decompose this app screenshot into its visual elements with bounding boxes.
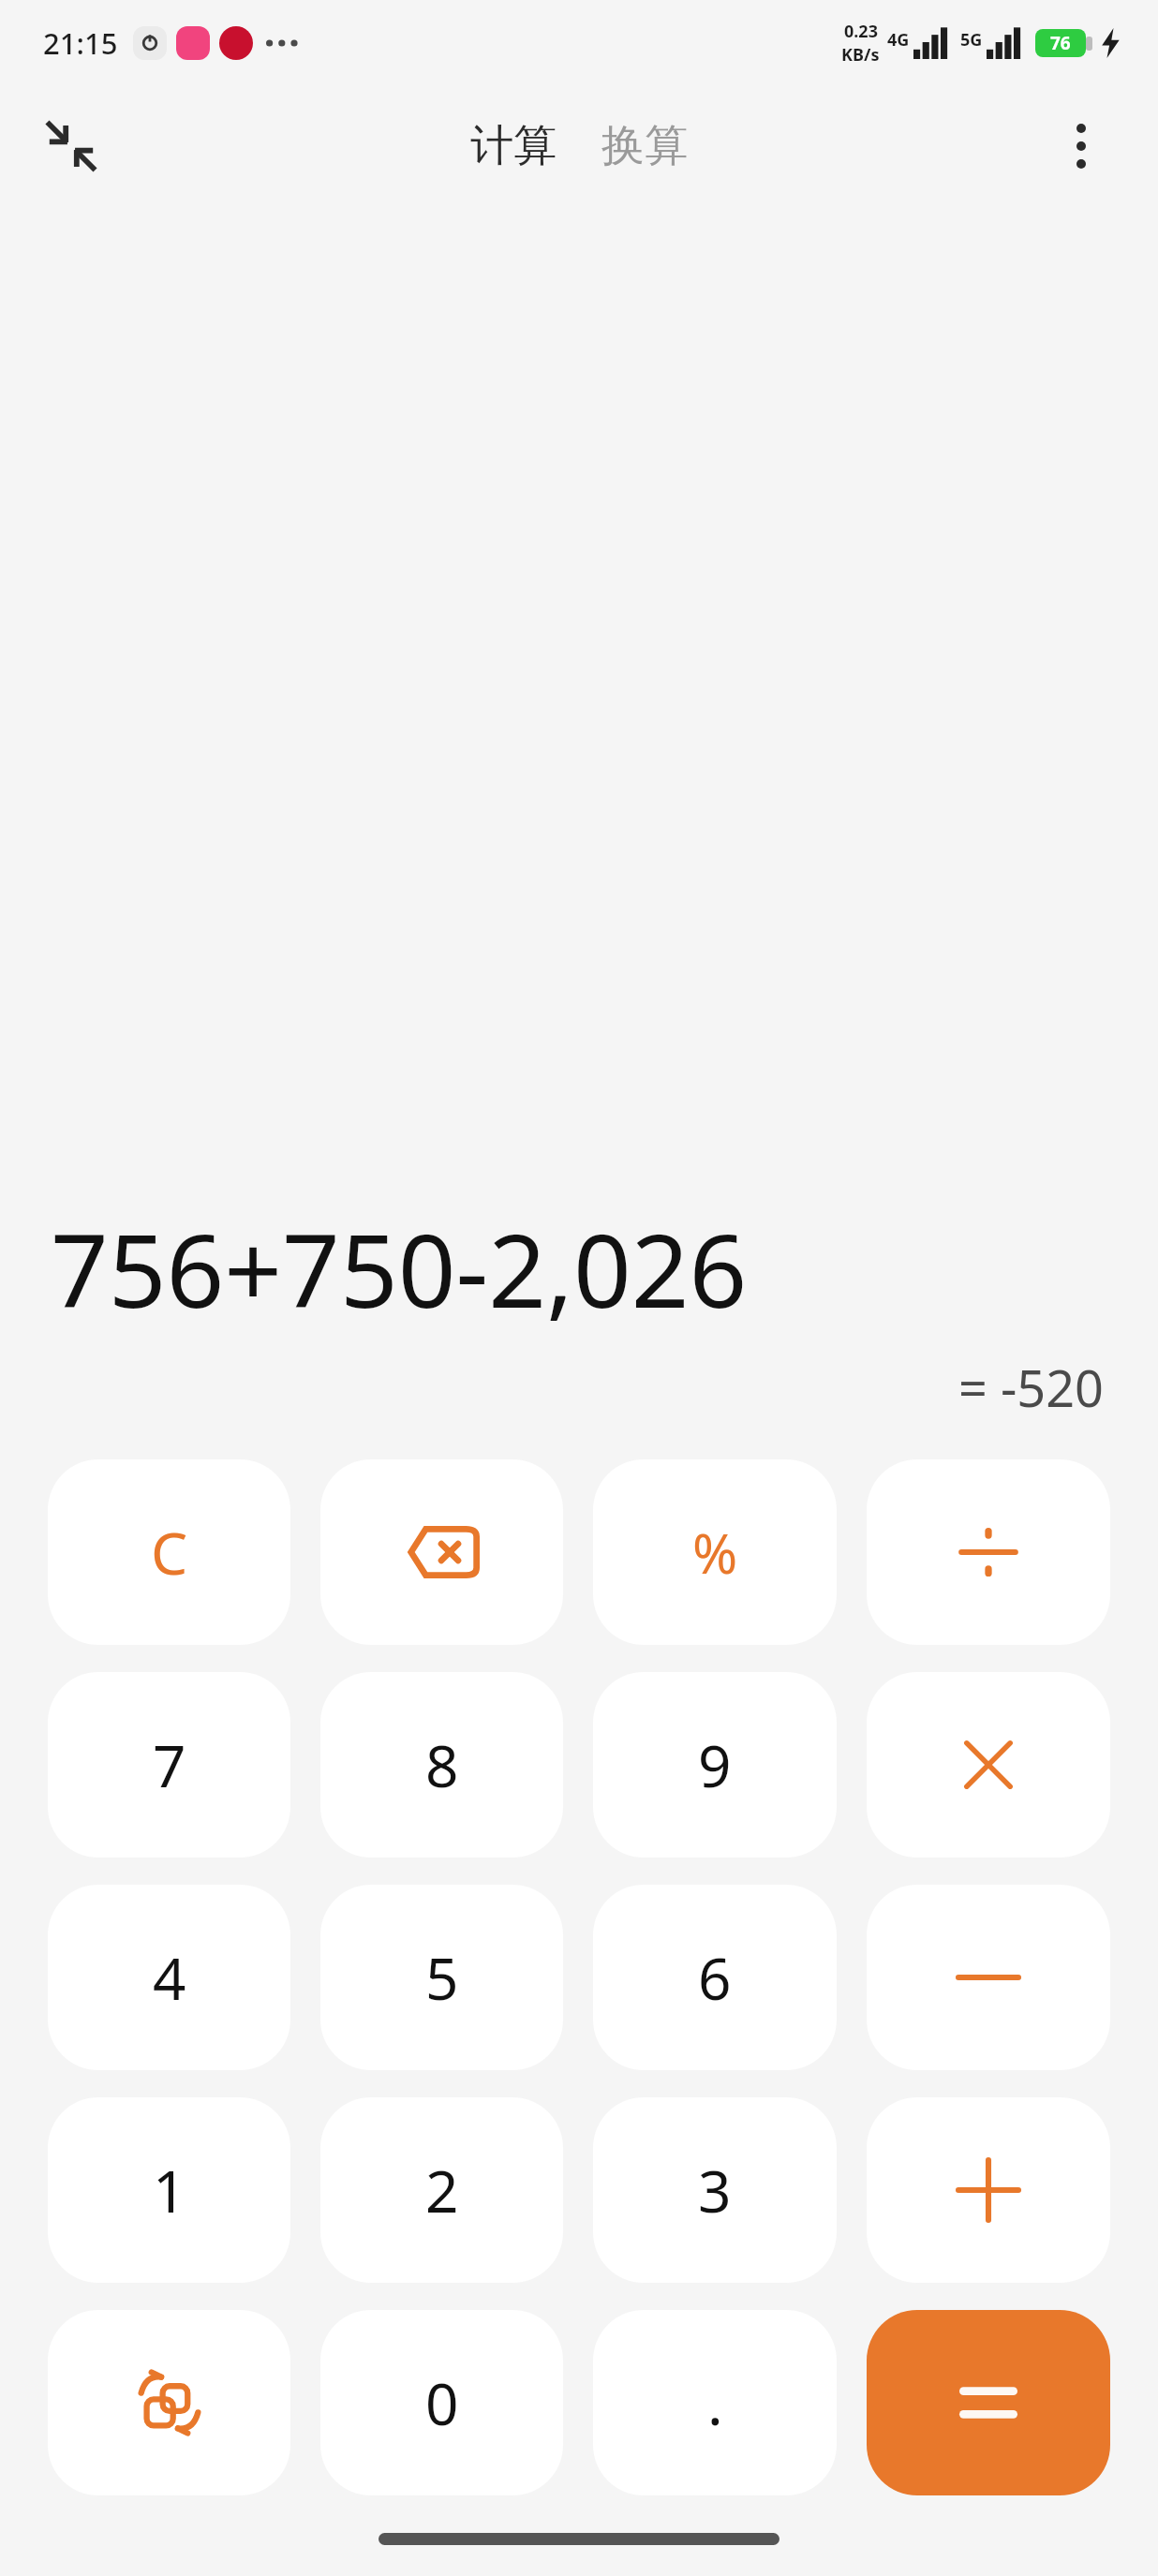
button[interactable]: 5 [320, 1885, 563, 2070]
staticText: 5 [425, 1938, 459, 2017]
button[interactable]: 2 [320, 2097, 563, 2283]
staticText: 8 [425, 1725, 459, 1804]
button[interactable]: Minus [867, 1885, 1110, 2070]
staticText: 换算 [601, 119, 688, 173]
staticText: 2 [425, 2151, 459, 2229]
staticText: 4G [887, 28, 910, 52]
button[interactable]: Equals [867, 2310, 1110, 2495]
button[interactable]: 0 [320, 2310, 563, 2495]
button[interactable]: Collapse [28, 103, 114, 189]
button[interactable]: 换算 [586, 108, 703, 185]
staticText: 4 [153, 1938, 186, 2017]
button[interactable]: Percent [593, 1459, 837, 1645]
staticText: 21:15 [43, 23, 118, 63]
staticText: 计算 [470, 119, 557, 173]
staticText: 0.23 [844, 20, 878, 43]
staticText: 5G [960, 28, 983, 52]
staticText: C [151, 1513, 188, 1591]
button[interactable]: Divide [867, 1459, 1110, 1645]
button[interactable]: Backspace [320, 1459, 563, 1645]
staticText: % [692, 1516, 738, 1590]
button[interactable]: 6 [593, 1885, 837, 2070]
staticText: 6 [698, 1938, 732, 2017]
staticText: 3 [698, 2151, 732, 2229]
button[interactable]: 7 [48, 1672, 290, 1858]
staticText: 0 [425, 2363, 459, 2442]
staticText: KB/s [841, 43, 880, 67]
staticText: = -520 [51, 1353, 1104, 1422]
button[interactable]: 计算 [455, 108, 572, 185]
button[interactable]: Multiply [867, 1672, 1110, 1858]
button[interactable]: 8 [320, 1672, 563, 1858]
button[interactable]: 3 [593, 2097, 837, 2283]
button[interactable]: 1 [48, 2097, 290, 2283]
staticText: 756+750-2,026 [51, 1200, 748, 1338]
button[interactable]: Clear [48, 1459, 290, 1645]
staticText: 76 [1050, 31, 1071, 55]
staticText: 1 [153, 2151, 186, 2229]
staticText: . [707, 2363, 723, 2442]
button[interactable]: 4 [48, 1885, 290, 2070]
button[interactable]: Unit conversion [48, 2310, 290, 2495]
button[interactable]: More options [1042, 107, 1121, 185]
button[interactable]: Decimal point [593, 2310, 837, 2495]
button[interactable]: Plus [867, 2097, 1110, 2283]
staticText: 7 [153, 1725, 186, 1804]
staticText: 9 [698, 1725, 732, 1804]
button[interactable]: 9 [593, 1672, 837, 1858]
